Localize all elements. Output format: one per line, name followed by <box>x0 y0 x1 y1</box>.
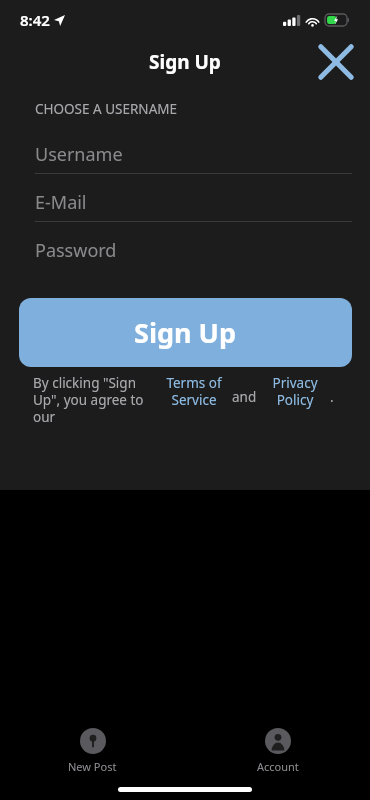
button[interactable]: Privacy Policy <box>264 374 326 409</box>
staticText: Username <box>35 142 123 167</box>
staticText: . <box>330 388 334 406</box>
staticText: and <box>232 388 257 406</box>
button[interactable]: Account <box>185 718 370 784</box>
staticText: Sign Up <box>149 49 221 75</box>
staticText: E-Mail <box>35 190 87 215</box>
button[interactable]: E-Mail <box>0 183 370 221</box>
staticText: By clicking "Sign Up", you agree to our <box>33 374 155 426</box>
staticText: 8:42 <box>20 10 50 30</box>
button[interactable]: Terms of Service <box>160 374 228 409</box>
staticText: Privacy Policy <box>264 374 326 409</box>
button[interactable]: New Post <box>0 718 185 784</box>
staticText: New Post <box>68 759 117 774</box>
button[interactable]: Username <box>0 135 370 173</box>
button[interactable]: Close <box>312 38 360 86</box>
staticText: Terms of Service <box>160 374 228 409</box>
button[interactable]: Sign Up <box>19 298 352 367</box>
staticText: Password <box>35 238 117 263</box>
staticText: Account <box>257 759 299 774</box>
staticText: CHOOSE A USERNAME <box>35 100 178 118</box>
staticText: Sign Up <box>134 314 237 351</box>
button[interactable]: Password <box>0 231 370 269</box>
